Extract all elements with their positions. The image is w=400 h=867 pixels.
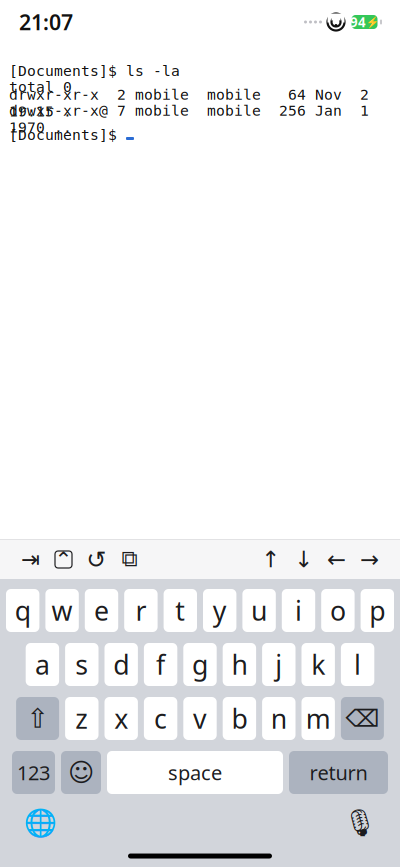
button[interactable]: x bbox=[104, 697, 138, 740]
button[interactable]: return bbox=[289, 751, 388, 794]
staticText: ☺ bbox=[68, 758, 94, 787]
staticText: r bbox=[135, 593, 146, 628]
staticText: v bbox=[193, 701, 207, 736]
button[interactable]: Emoji bbox=[61, 751, 101, 794]
staticText: t bbox=[175, 593, 185, 628]
staticText: [Documents]$ bbox=[9, 127, 126, 143]
staticText: ⧉ bbox=[121, 548, 137, 570]
staticText: d bbox=[113, 647, 129, 682]
button[interactable]: Dictation bbox=[338, 801, 382, 845]
staticText: ⇥ bbox=[21, 547, 40, 572]
button[interactable]: g bbox=[183, 643, 217, 686]
button[interactable]: l bbox=[341, 643, 374, 686]
staticText: ↑ bbox=[261, 547, 280, 572]
staticText: 94 bbox=[350, 13, 366, 31]
button[interactable]: Tab bbox=[14, 540, 47, 579]
button[interactable]: o bbox=[321, 589, 355, 632]
button[interactable]: d bbox=[104, 643, 138, 686]
staticText: drwxr-xr-x@ 7 mobile mobile 256 Jan 1 19… bbox=[9, 102, 378, 136]
staticText: 123 bbox=[17, 759, 50, 786]
button[interactable]: y bbox=[203, 589, 236, 632]
button[interactable]: f bbox=[144, 643, 177, 686]
staticText: ⌃ bbox=[54, 547, 72, 572]
staticText: space bbox=[168, 759, 222, 786]
staticText: j bbox=[275, 647, 282, 682]
staticText: p bbox=[369, 593, 385, 628]
staticText: total 0 bbox=[9, 79, 72, 95]
staticText: m bbox=[306, 701, 331, 736]
button[interactable]: e bbox=[85, 589, 118, 632]
button[interactable]: Paste bbox=[113, 540, 146, 579]
staticText: i bbox=[295, 593, 302, 628]
staticText: c bbox=[154, 701, 167, 736]
staticText: b bbox=[231, 701, 247, 736]
button[interactable]: Down arrow bbox=[287, 540, 320, 579]
staticText: ⚡ bbox=[366, 16, 379, 28]
staticText: ↓ bbox=[294, 547, 313, 572]
button[interactable]: Control bbox=[47, 540, 80, 579]
staticText: z bbox=[75, 701, 88, 736]
staticText: [Documents]$ ls -la bbox=[9, 63, 180, 79]
button[interactable]: Left arrow bbox=[320, 540, 353, 579]
staticText: 🎙 bbox=[343, 808, 377, 838]
staticText: u bbox=[251, 593, 267, 628]
staticText: y bbox=[213, 593, 227, 628]
button[interactable]: Shift bbox=[16, 697, 59, 740]
staticText: g bbox=[192, 647, 208, 682]
button[interactable]: 123 bbox=[12, 751, 55, 794]
staticText: a bbox=[35, 647, 50, 682]
button[interactable]: Up arrow bbox=[254, 540, 287, 579]
button[interactable]: i bbox=[282, 589, 315, 632]
staticText: l bbox=[354, 647, 361, 682]
staticText: s bbox=[75, 647, 88, 682]
button[interactable]: v bbox=[183, 697, 217, 740]
staticText: h bbox=[231, 647, 247, 682]
button[interactable]: Delete bbox=[341, 697, 384, 740]
button[interactable]: p bbox=[361, 589, 394, 632]
staticText: 🌐 bbox=[23, 808, 56, 838]
button[interactable]: k bbox=[301, 643, 335, 686]
button[interactable]: Right arrow bbox=[353, 540, 386, 579]
button[interactable]: t bbox=[164, 589, 197, 632]
staticText: k bbox=[311, 647, 325, 682]
button[interactable]: Next keyboard bbox=[18, 801, 62, 845]
staticText: w bbox=[52, 593, 73, 628]
staticText: ↺ bbox=[86, 546, 106, 573]
button[interactable]: c bbox=[144, 697, 177, 740]
button[interactable]: m bbox=[301, 697, 335, 740]
staticText: → bbox=[360, 547, 379, 572]
staticText: n bbox=[271, 701, 287, 736]
staticText: f bbox=[156, 647, 165, 682]
staticText: ⇧ bbox=[27, 703, 49, 734]
button[interactable]: n bbox=[262, 697, 295, 740]
button[interactable]: j bbox=[262, 643, 295, 686]
button[interactable]: b bbox=[223, 697, 256, 740]
staticText: 21:07 bbox=[19, 8, 73, 36]
button[interactable]: w bbox=[45, 589, 79, 632]
button[interactable]: q bbox=[6, 589, 39, 632]
staticText: ← bbox=[327, 547, 346, 572]
button[interactable]: u bbox=[242, 589, 276, 632]
staticText: ⌫ bbox=[345, 705, 379, 732]
button[interactable]: a bbox=[26, 643, 59, 686]
staticText: return bbox=[309, 759, 367, 786]
button[interactable]: z bbox=[65, 697, 98, 740]
button[interactable]: Undo bbox=[80, 540, 113, 579]
button[interactable]: h bbox=[223, 643, 256, 686]
staticText: q bbox=[15, 593, 31, 628]
staticText: drwxr-xr-x 2 mobile mobile 64 Nov 2 19:1… bbox=[9, 86, 369, 120]
button[interactable]: s bbox=[65, 643, 98, 686]
staticText: o bbox=[330, 593, 346, 628]
staticText: e bbox=[94, 593, 109, 628]
staticText: x bbox=[114, 701, 128, 736]
button[interactable]: space bbox=[107, 751, 283, 794]
button[interactable]: r bbox=[124, 589, 158, 632]
